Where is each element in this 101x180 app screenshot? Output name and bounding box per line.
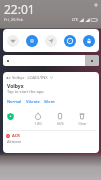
button[interactable]: Airplane mode: [64, 35, 76, 47]
staticText: 1.8G: [34, 121, 42, 126]
staticText: Clear: [78, 121, 87, 126]
button[interactable]: Silent: [44, 99, 55, 104]
button[interactable]: Clear: [76, 112, 88, 126]
button[interactable]: Mobile data: [26, 35, 38, 47]
staticText: Tap to start the app: [7, 89, 44, 94]
staticText: Fri, 26 Feb: [4, 17, 24, 22]
staticText: Volbyx: [7, 83, 24, 90]
staticText: 66%: [57, 121, 64, 126]
button[interactable]: Wi-Fi: [7, 35, 19, 47]
staticText: ACR: [12, 133, 20, 138]
staticText: LTE: [72, 17, 78, 22]
staticText: Volbyx · LOADLYNX: [12, 75, 48, 80]
button[interactable]: Brightness: [3, 55, 99, 66]
staticText: Akitone: [7, 139, 22, 144]
button[interactable]: Normal: [7, 99, 22, 104]
staticText: Normal: [7, 99, 22, 104]
button[interactable]: Security scan: [6, 112, 15, 121]
staticText: 22:01: [4, 1, 35, 17]
staticText: Silent: [44, 99, 55, 104]
button[interactable]: Auto rotate: [83, 35, 95, 47]
button[interactable]: Location: [45, 35, 57, 47]
staticText: Vibrate: [26, 99, 40, 104]
button[interactable]: 66%: [54, 112, 66, 126]
button[interactable]: 1.8G: [32, 112, 44, 126]
button[interactable]: Vibrate: [26, 99, 40, 104]
